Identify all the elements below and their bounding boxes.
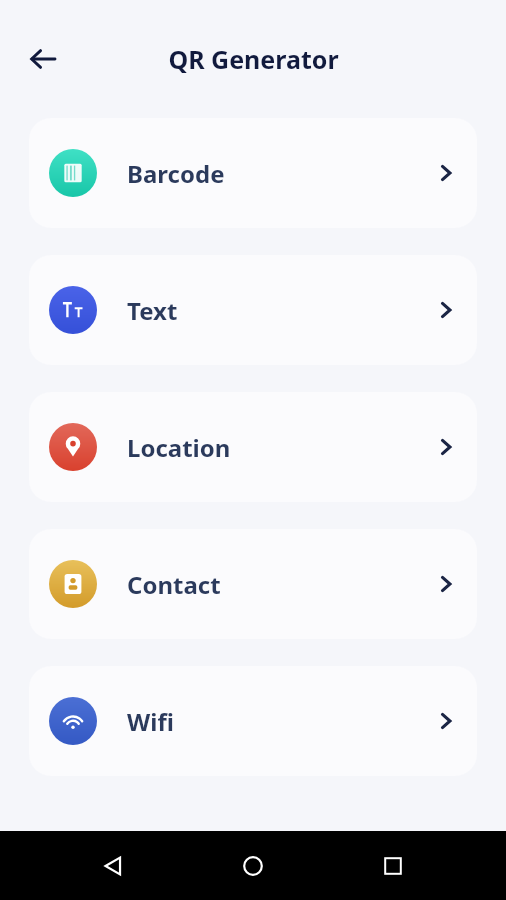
button[interactable]: Text (29, 255, 477, 365)
staticText: Contact (127, 568, 221, 601)
button[interactable]: Location (29, 392, 477, 502)
button[interactable]: Recent apps (366, 839, 420, 893)
staticText: Barcode (127, 157, 225, 190)
button[interactable]: Back (16, 32, 70, 86)
staticText: Text (127, 294, 178, 327)
button[interactable]: Contact (29, 529, 477, 639)
staticText: Location (127, 431, 231, 464)
button[interactable]: Back (86, 839, 140, 893)
staticText: Wifi (127, 705, 174, 738)
staticText: QR Generator (168, 42, 339, 76)
button[interactable]: Wifi (29, 666, 477, 776)
button[interactable]: Barcode (29, 118, 477, 228)
button[interactable]: Home (226, 839, 280, 893)
